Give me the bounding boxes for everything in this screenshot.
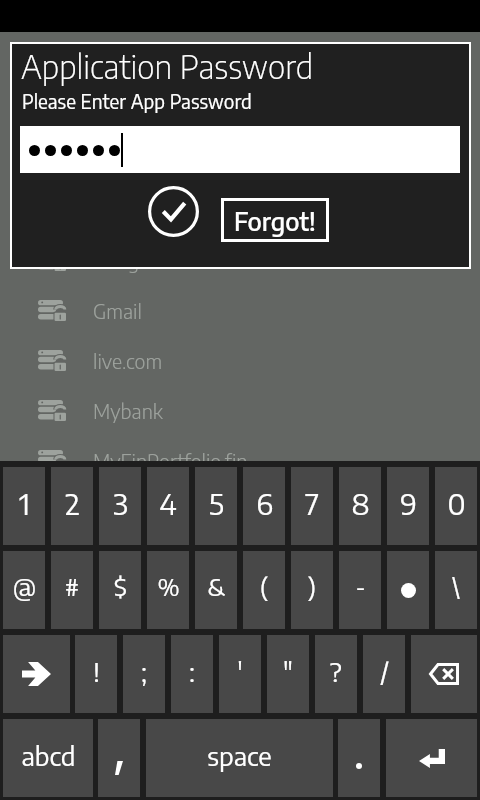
- button[interactable]: ': [219, 635, 261, 713]
- button[interactable]: $: [99, 551, 141, 629]
- button[interactable]: Gmail: [0, 285, 480, 335]
- staticText: 1: [19, 485, 30, 521]
- staticText: ;: [141, 655, 147, 687]
- staticText: #: [65, 571, 79, 601]
- button[interactable]: &: [195, 551, 237, 629]
- button[interactable]: Period: [338, 719, 380, 797]
- button[interactable]: Mybank: [0, 385, 480, 435]
- staticText: !: [93, 655, 100, 687]
- button[interactable]: 3: [99, 467, 141, 545]
- staticText: MyFinPortfolio.fin: [93, 448, 248, 473]
- button[interactable]: @: [3, 551, 45, 629]
- staticText: Mybank: [93, 398, 163, 423]
- button[interactable]: ): [291, 551, 333, 629]
- button[interactable]: 0: [435, 467, 477, 545]
- button[interactable]: Enter: [386, 719, 477, 797]
- button[interactable]: ": [267, 635, 309, 713]
- staticText: 9: [400, 485, 417, 521]
- button[interactable]: /: [363, 635, 405, 713]
- staticText: %: [157, 571, 180, 601]
- staticText: 4: [159, 485, 177, 521]
- button[interactable]: !: [75, 635, 117, 713]
- staticText: :: [189, 655, 195, 687]
- button[interactable]: :: [171, 635, 213, 713]
- staticText: &: [207, 571, 225, 601]
- staticText: ?: [330, 655, 342, 687]
- button[interactable]: %: [147, 551, 189, 629]
- button[interactable]: OK: [148, 186, 199, 237]
- button[interactable]: 4: [147, 467, 189, 545]
- staticText: abcd: [21, 739, 76, 771]
- staticText: live.com: [93, 348, 163, 373]
- button[interactable]: Next: [3, 635, 70, 713]
- staticText: Google: [93, 248, 154, 273]
- staticText: \: [452, 571, 460, 601]
- staticText: Gmail: [93, 298, 142, 323]
- button[interactable]: 7: [291, 467, 333, 545]
- button[interactable]: 5: [195, 467, 237, 545]
- button[interactable]: 2: [51, 467, 93, 545]
- staticText: (: [260, 571, 268, 601]
- staticText: 7: [305, 485, 319, 521]
- button[interactable]: 8: [339, 467, 381, 545]
- button[interactable]: #: [51, 551, 93, 629]
- button[interactable]: 1: [3, 467, 45, 545]
- staticText: 2: [65, 485, 80, 521]
- button[interactable]: Bullet: [387, 551, 429, 629]
- staticText: 6: [256, 485, 273, 521]
- staticText: 8: [351, 485, 370, 521]
- staticText: @: [13, 571, 36, 601]
- button[interactable]: abcd: [3, 719, 93, 797]
- button[interactable]: space: [146, 719, 333, 797]
- staticText: $: [114, 571, 127, 601]
- button[interactable]: ;: [123, 635, 165, 713]
- button[interactable]: Backspace: [411, 635, 477, 713]
- button[interactable]: MyFinPortfolio.fin: [0, 435, 480, 485]
- button[interactable]: Forgot!: [224, 201, 326, 239]
- staticText: space: [207, 739, 272, 771]
- staticText: /: [380, 655, 389, 687]
- button[interactable]: Google: [0, 235, 480, 285]
- staticText: Application Password: [21, 46, 313, 86]
- button[interactable]: [20, 126, 460, 173]
- button[interactable]: (: [243, 551, 285, 629]
- staticText: -: [355, 571, 366, 601]
- staticText: 3: [113, 485, 128, 521]
- staticText: ): [308, 571, 316, 601]
- button[interactable]: live.com: [0, 335, 480, 385]
- button[interactable]: \: [435, 551, 477, 629]
- staticText: ": [283, 655, 293, 687]
- staticText: Please Enter App Password: [22, 89, 252, 113]
- button[interactable]: 6: [243, 467, 285, 545]
- button[interactable]: Comma: [98, 719, 140, 797]
- staticText: ': [237, 655, 243, 687]
- staticText: 0: [447, 485, 466, 521]
- button[interactable]: -: [339, 551, 381, 629]
- button[interactable]: 9: [387, 467, 429, 545]
- button[interactable]: ?: [315, 635, 357, 713]
- staticText: 5: [209, 485, 224, 521]
- staticText: Forgot!: [234, 205, 316, 236]
